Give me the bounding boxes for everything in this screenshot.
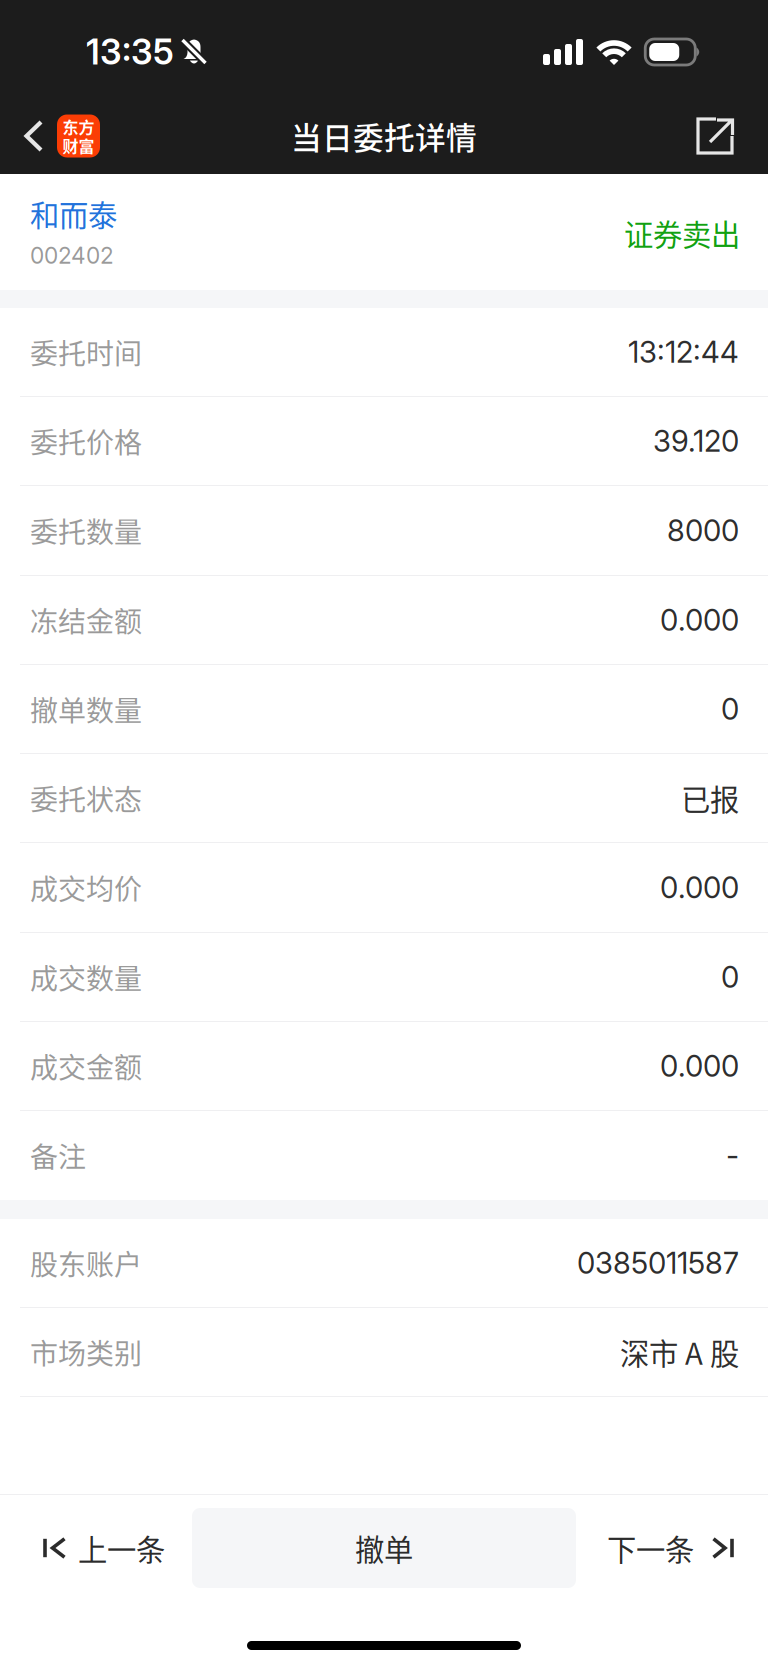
staticText: 0 <box>721 691 739 727</box>
staticText: 0.000 <box>660 870 739 905</box>
staticText: 深市 A 股 <box>620 1331 739 1373</box>
staticText: 13:12:44 <box>628 334 739 370</box>
staticText: 上一条 <box>78 1527 165 1569</box>
staticText: 股东账户 <box>30 1243 142 1283</box>
staticText: 8000 <box>667 513 739 548</box>
staticText: 0.000 <box>660 1048 739 1084</box>
staticText: 委托时间 <box>30 332 142 372</box>
staticText: 委托状态 <box>30 778 142 818</box>
button[interactable]: 上一条 <box>0 1495 192 1601</box>
button[interactable]: Back <box>0 98 118 174</box>
staticText: 成交金额 <box>30 1046 142 1086</box>
staticText: 39.120 <box>653 423 739 459</box>
staticText: 成交数量 <box>30 957 142 997</box>
button[interactable]: Share <box>672 98 768 174</box>
staticText: 委托数量 <box>30 510 142 551</box>
staticText: 当日委托详情 <box>291 114 477 158</box>
staticText: 东方 <box>62 115 94 138</box>
staticText: 0 <box>721 959 739 995</box>
staticText: 备注 <box>30 1135 86 1176</box>
staticText: 和而泰 <box>30 192 117 235</box>
staticText: 0.000 <box>660 602 739 638</box>
staticText: 已报 <box>681 777 739 819</box>
staticText: 下一条 <box>607 1527 694 1569</box>
staticText: 撤单 <box>355 1527 413 1569</box>
staticText: 冻结金额 <box>30 600 142 640</box>
staticText: - <box>726 1138 739 1173</box>
button[interactable]: 撤单 <box>192 1508 576 1588</box>
button[interactable]: 下一条 <box>576 1495 768 1601</box>
staticText: 市场类别 <box>30 1332 142 1372</box>
staticText: 委托价格 <box>30 421 142 461</box>
staticText: 财富 <box>62 134 94 157</box>
staticText: 成交均价 <box>30 867 142 908</box>
staticText: 证券卖出 <box>624 212 740 254</box>
staticText: 002402 <box>30 242 114 269</box>
staticText: 13:35 <box>86 31 174 73</box>
staticText: 0385011587 <box>577 1245 739 1281</box>
staticText: 撤单数量 <box>30 689 142 729</box>
